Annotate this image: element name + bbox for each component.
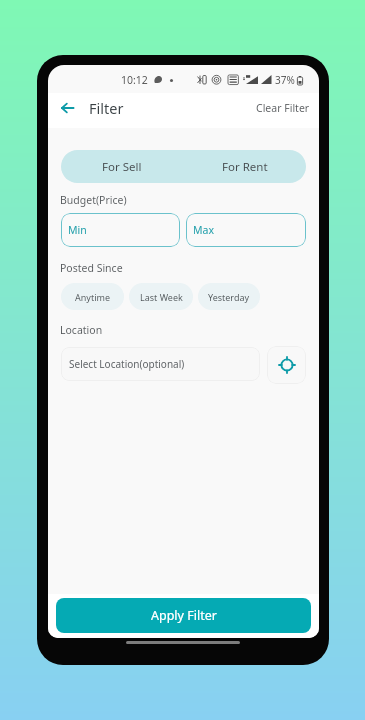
staticText: Anytime <box>75 291 110 303</box>
staticText: Max <box>193 223 214 237</box>
staticText: Select Location(optional) <box>69 357 185 371</box>
staticText: 37% <box>275 73 295 87</box>
staticText: Min <box>68 223 87 237</box>
button[interactable]: Anytime <box>61 283 124 310</box>
button[interactable]: For Rent <box>183 150 306 183</box>
button[interactable]: Yesterday <box>198 283 260 310</box>
staticText: Posted Since <box>60 261 123 275</box>
button[interactable]: Min <box>61 213 180 247</box>
staticText: Last Week <box>140 291 183 303</box>
staticText: Apply Filter <box>151 607 217 624</box>
button[interactable]: Use my location <box>267 346 306 384</box>
staticText: Budget(Price) <box>60 193 127 207</box>
staticText: For Sell <box>102 159 142 175</box>
button[interactable]: Back <box>54 90 80 125</box>
button[interactable]: Max <box>186 213 306 247</box>
button[interactable]: Clear Filter <box>251 90 315 125</box>
staticText: 10:12 <box>121 73 148 87</box>
staticText: Yesterday <box>208 291 250 303</box>
button[interactable]: Select Location(optional) <box>61 347 260 381</box>
staticText: Location <box>60 323 103 337</box>
staticText: Clear Filter <box>256 101 310 115</box>
staticText: For Rent <box>222 159 268 175</box>
button[interactable]: Apply Filter <box>56 598 311 633</box>
button[interactable]: For Sell <box>61 150 183 183</box>
staticText: Filter <box>89 98 124 118</box>
button[interactable]: Last Week <box>129 283 193 310</box>
